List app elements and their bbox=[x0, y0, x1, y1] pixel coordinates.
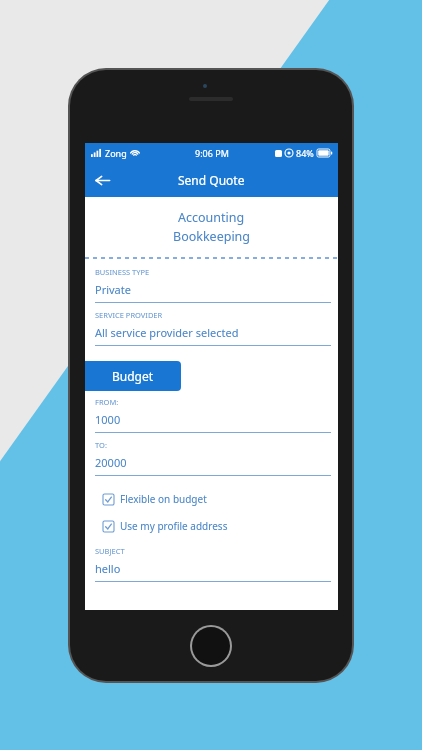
staticText: SUBJECT bbox=[95, 546, 125, 556]
button[interactable]: SUBJECT bbox=[85, 546, 338, 589]
button[interactable]: FROM: bbox=[85, 397, 338, 440]
staticText: Zong bbox=[105, 147, 127, 159]
staticText: All service provider selected bbox=[95, 325, 239, 340]
staticText: TO: bbox=[95, 440, 107, 450]
staticText: FROM: bbox=[95, 397, 119, 407]
staticText: 1000 bbox=[95, 412, 121, 427]
staticText: 84% bbox=[296, 147, 314, 159]
button[interactable]: TO: bbox=[85, 440, 338, 483]
button[interactable]: SERVICE PROVIDER bbox=[85, 310, 338, 353]
button[interactable]: Flexible on budget bbox=[85, 492, 338, 506]
button[interactable]: BUSINESS TYPE bbox=[85, 267, 338, 310]
staticText: Private bbox=[95, 282, 131, 297]
button[interactable]: Use my profile address bbox=[85, 519, 338, 533]
staticText: hello bbox=[95, 561, 121, 576]
button[interactable]: Back bbox=[85, 163, 119, 197]
staticText: Accounting bbox=[178, 209, 245, 226]
staticText: BUSINESS TYPE bbox=[95, 267, 150, 277]
button[interactable]: Budget bbox=[85, 361, 181, 391]
staticText: 9:06 PM bbox=[195, 147, 229, 159]
staticText: Budget bbox=[112, 368, 154, 384]
staticText: Flexible on budget bbox=[120, 492, 207, 506]
other: Home bbox=[192, 627, 230, 665]
staticText: Bookkeeping bbox=[173, 228, 251, 245]
staticText: SERVICE PROVIDER bbox=[95, 310, 163, 320]
staticText: 20000 bbox=[95, 455, 127, 470]
staticText: Use my profile address bbox=[120, 519, 228, 533]
staticText: Send Quote bbox=[178, 172, 245, 188]
